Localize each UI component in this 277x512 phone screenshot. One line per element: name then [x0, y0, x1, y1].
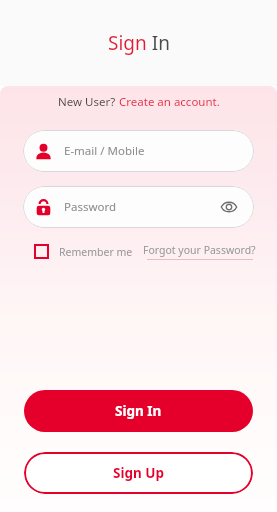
staticText: Forgot your Password? — [143, 243, 256, 257]
button[interactable]: Show password — [218, 196, 240, 218]
button[interactable]: Forgot your Password? — [143, 243, 256, 260]
staticText: Remember me — [59, 245, 133, 259]
staticText: E-mail / Mobile — [64, 143, 145, 159]
button[interactable]: Password — [23, 186, 254, 228]
staticText: Sign In — [108, 30, 170, 56]
staticText: Create an account. — [119, 94, 220, 110]
button[interactable]: E-mail / Mobile — [23, 130, 254, 172]
staticText: Password — [64, 199, 117, 215]
button[interactable]: Remember me — [34, 241, 133, 262]
staticText: Sign Up — [113, 464, 165, 482]
button[interactable]: Sign In — [24, 390, 253, 432]
staticText: Sign In — [115, 402, 162, 420]
button[interactable]: Sign Up — [24, 452, 253, 494]
button[interactable]: Create an account. — [119, 94, 220, 110]
staticText: New User? — [58, 94, 119, 110]
